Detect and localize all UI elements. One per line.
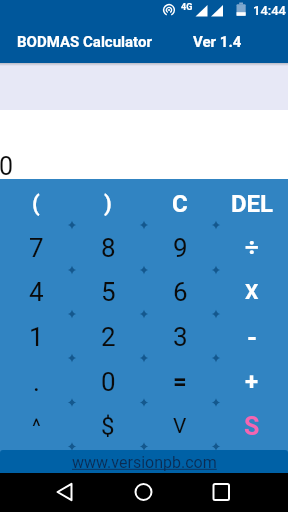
- button[interactable]: DEL: [216, 179, 288, 223]
- button[interactable]: -: [216, 311, 288, 356]
- button[interactable]: [0, 473, 96, 512]
- staticText: 0: [101, 367, 116, 397]
- button[interactable]: +: [216, 356, 288, 401]
- button[interactable]: 3: [144, 311, 216, 356]
- button[interactable]: ): [72, 179, 144, 223]
- staticText: (: [32, 191, 40, 217]
- staticText: .: [33, 367, 40, 397]
- staticText: DEL: [231, 190, 274, 218]
- staticText: 7: [29, 233, 44, 263]
- button[interactable]: S: [216, 401, 288, 446]
- staticText: 1: [29, 322, 44, 352]
- staticText: =: [173, 368, 187, 396]
- button[interactable]: (: [0, 179, 72, 223]
- staticText: 2: [101, 322, 116, 352]
- staticText: -: [247, 322, 258, 352]
- staticText: V: [173, 414, 187, 439]
- button[interactable]: 5: [72, 267, 144, 311]
- staticText: $: [101, 413, 115, 441]
- staticText: ): [104, 191, 112, 217]
- staticText: ÷: [245, 234, 259, 262]
- staticText: 6: [173, 277, 188, 307]
- button[interactable]: $: [72, 401, 144, 446]
- button[interactable]: .: [0, 356, 72, 401]
- staticText: 8: [101, 233, 116, 263]
- button[interactable]: 8: [72, 223, 144, 267]
- button[interactable]: [192, 473, 288, 512]
- button[interactable]: 2: [72, 311, 144, 356]
- staticText: C: [172, 190, 188, 218]
- staticText: BODMAS Calculator: [17, 33, 152, 51]
- button[interactable]: V: [144, 401, 216, 446]
- staticText: X: [245, 280, 259, 305]
- button[interactable]: ^: [0, 401, 72, 446]
- button[interactable]: 0: [72, 356, 144, 401]
- button[interactable]: 9: [144, 223, 216, 267]
- button[interactable]: X: [216, 267, 288, 311]
- staticText: 0: [0, 152, 14, 181]
- button[interactable]: 6: [144, 267, 216, 311]
- button[interactable]: ÷: [216, 223, 288, 267]
- button[interactable]: [96, 473, 192, 512]
- button[interactable]: 1: [0, 311, 72, 356]
- staticText: 14:44: [253, 3, 287, 18]
- staticText: www.versionpb.com: [72, 453, 217, 472]
- staticText: S: [244, 412, 260, 441]
- button[interactable]: 7: [0, 223, 72, 267]
- staticText: 4: [29, 277, 44, 307]
- button[interactable]: www.versionpb.com: [0, 450, 288, 473]
- staticText: 3: [173, 322, 188, 352]
- staticText: 5: [101, 277, 116, 307]
- staticText: +: [245, 368, 259, 396]
- staticText: 9: [173, 233, 188, 263]
- button[interactable]: C: [144, 179, 216, 223]
- staticText: Ver 1.4: [193, 33, 242, 51]
- staticText: 4G: [181, 2, 193, 13]
- button[interactable]: 4: [0, 267, 72, 311]
- staticText: ^: [32, 414, 41, 439]
- button[interactable]: =: [144, 356, 216, 401]
